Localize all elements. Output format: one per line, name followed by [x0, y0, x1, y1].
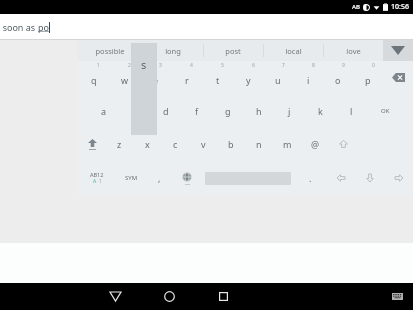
staticText: q	[91, 74, 97, 86]
staticText: 2	[128, 62, 131, 69]
staticText: c	[173, 138, 178, 150]
staticText: a	[101, 105, 107, 117]
button[interactable]: c	[161, 127, 189, 161]
staticText: 3	[159, 62, 162, 69]
button[interactable]: Down	[355, 161, 384, 195]
staticText: b	[228, 138, 234, 150]
staticText: j	[288, 105, 291, 117]
button[interactable]: 2	[109, 61, 140, 94]
staticText: s	[141, 57, 147, 72]
button[interactable]: @	[301, 127, 329, 161]
button[interactable]: x	[133, 127, 161, 161]
staticText: A	[93, 178, 97, 185]
button[interactable]: Home	[142, 283, 196, 310]
button[interactable]: Left	[326, 161, 355, 195]
button[interactable]: SYM	[115, 161, 147, 195]
button[interactable]: Keyboard	[389, 283, 405, 310]
staticText: local	[285, 46, 302, 56]
button[interactable]: OK	[367, 94, 404, 127]
button[interactable]: 6	[233, 61, 263, 94]
button[interactable]: 1	[78, 61, 109, 94]
button[interactable]: j	[274, 94, 305, 127]
button[interactable]: a	[88, 94, 119, 127]
button[interactable]: Back	[88, 283, 142, 310]
staticText: 4	[190, 62, 193, 69]
staticText: i	[307, 74, 310, 86]
staticText: 10:56	[391, 2, 409, 12]
staticText: 7	[282, 62, 285, 69]
staticText: y	[246, 74, 251, 86]
button[interactable]: v	[189, 127, 217, 161]
staticText: l	[350, 105, 353, 117]
button[interactable]: 8	[293, 61, 323, 94]
staticText: 1	[97, 62, 100, 69]
staticText: g	[225, 105, 231, 117]
button[interactable]: f	[181, 94, 212, 127]
button[interactable]: m	[273, 127, 301, 161]
staticText: post	[225, 46, 241, 56]
button[interactable]: Switch mode	[78, 161, 115, 195]
button[interactable]: d	[150, 94, 181, 127]
button[interactable]: Shift	[329, 127, 357, 161]
staticText: .	[309, 172, 312, 184]
staticText: s soon as	[0, 21, 38, 33]
staticText: u	[275, 74, 281, 86]
button[interactable]: 0	[353, 61, 383, 94]
staticText: 6	[252, 62, 255, 69]
button[interactable]: Space	[201, 161, 294, 195]
button[interactable]: Language	[172, 161, 201, 195]
staticText: t	[216, 74, 220, 86]
button[interactable]	[383, 61, 413, 94]
staticText: 5	[221, 62, 224, 69]
staticText: SYM	[125, 174, 138, 182]
staticText: d	[163, 105, 169, 117]
button[interactable]: ,	[147, 161, 172, 195]
staticText: o	[335, 74, 341, 86]
button[interactable]: 5	[202, 61, 233, 94]
staticText: z	[117, 138, 122, 150]
button[interactable]: s	[119, 94, 150, 127]
staticText: possible	[95, 46, 125, 56]
button[interactable]: 9	[323, 61, 353, 94]
staticText: 1	[99, 178, 102, 185]
staticText: h	[256, 105, 262, 117]
button[interactable]: love	[323, 40, 383, 61]
staticText: OK	[381, 107, 390, 115]
staticText: n	[256, 138, 262, 150]
staticText: 9	[342, 62, 345, 69]
staticText: x	[145, 138, 150, 150]
staticText: w	[121, 74, 129, 86]
staticText: po	[38, 21, 49, 33]
button[interactable]: post	[203, 40, 263, 61]
staticText: AB12	[90, 171, 104, 178]
staticText: love	[346, 46, 361, 56]
button[interactable]: Recents	[196, 283, 250, 310]
button[interactable]: 7	[263, 61, 293, 94]
button[interactable]: 4	[171, 61, 202, 94]
staticText: ,	[158, 172, 161, 184]
button[interactable]: b	[217, 127, 245, 161]
staticText: m	[283, 138, 292, 150]
button[interactable]: h	[243, 94, 274, 127]
button[interactable]: n	[245, 127, 273, 161]
button[interactable]: k	[305, 94, 336, 127]
button[interactable]: 3	[140, 61, 171, 94]
button[interactable]: More suggestions	[383, 40, 413, 61]
button[interactable]: z	[106, 127, 133, 161]
button[interactable]: Shift	[79, 127, 106, 161]
button[interactable]: g	[212, 94, 243, 127]
staticText: f	[195, 105, 199, 117]
button[interactable]: possible	[78, 40, 142, 61]
staticText: AB	[352, 3, 360, 11]
button[interactable]: Right	[384, 161, 413, 195]
button[interactable]: l	[336, 94, 367, 127]
staticText: r	[185, 74, 189, 86]
staticText: p	[365, 74, 371, 86]
staticText: 8	[312, 62, 315, 69]
staticText: e	[153, 74, 159, 86]
button[interactable]: local	[263, 40, 323, 61]
staticText: 0	[372, 62, 375, 69]
button[interactable]: long	[142, 40, 203, 61]
